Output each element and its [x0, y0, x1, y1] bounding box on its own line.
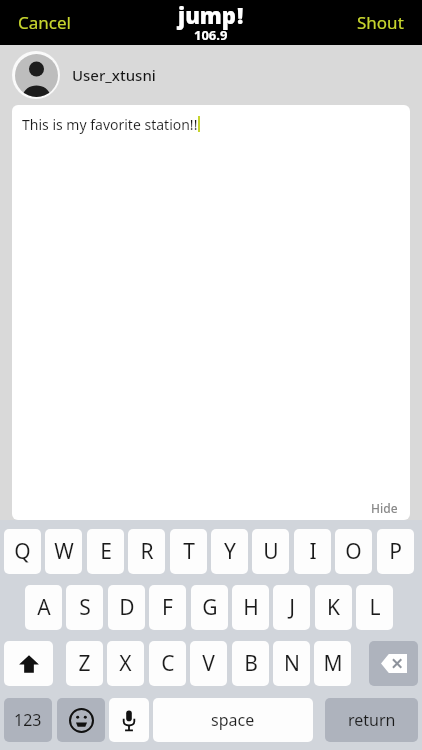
button[interactable]: Emoji [57, 698, 105, 742]
staticText: W [54, 537, 74, 566]
button[interactable]: Profile picture [12, 51, 60, 99]
staticText: U [263, 537, 279, 566]
button[interactable]: L [356, 585, 393, 630]
button[interactable]: Dictate [109, 698, 149, 742]
button[interactable]: A [25, 585, 62, 630]
staticText: space [211, 709, 255, 731]
button[interactable]: B [232, 641, 269, 686]
button[interactable]: I [294, 529, 331, 574]
button[interactable]: P [377, 529, 414, 574]
button[interactable]: This is my favorite station!! [12, 105, 410, 520]
staticText: T [183, 537, 195, 566]
button[interactable]: X [107, 641, 144, 686]
button[interactable]: return [325, 698, 418, 742]
staticText: P [389, 537, 402, 566]
button[interactable]: Z [66, 641, 103, 686]
button[interactable]: Shout [339, 3, 422, 42]
staticText: Y [224, 537, 236, 566]
button[interactable]: F [149, 585, 186, 630]
button[interactable]: Shift [4, 641, 53, 686]
button[interactable]: D [108, 585, 145, 630]
button[interactable]: R [128, 529, 165, 574]
button[interactable]: U [252, 529, 289, 574]
staticText: J [289, 593, 295, 622]
staticText: Shout [357, 11, 404, 34]
button[interactable]: G [191, 585, 228, 630]
staticText: Q [14, 537, 31, 566]
staticText: K [327, 593, 340, 622]
button[interactable]: M [314, 641, 351, 686]
button[interactable]: T [170, 529, 207, 574]
staticText: N [284, 649, 300, 678]
staticText: S [79, 593, 91, 622]
staticText: Z [78, 649, 91, 678]
button[interactable]: W [45, 529, 82, 574]
staticText: 106.9 [194, 26, 228, 41]
button[interactable]: Q [4, 529, 41, 574]
staticText: A [37, 593, 51, 622]
button[interactable]: S [66, 585, 103, 630]
staticText: Hide [371, 500, 398, 516]
staticText: return [348, 709, 396, 731]
staticText: D [119, 593, 135, 622]
button[interactable]: space [153, 698, 313, 742]
button[interactable]: 123 [4, 698, 52, 742]
staticText: B [244, 649, 258, 678]
staticText: O [345, 537, 362, 566]
staticText: L [369, 593, 381, 622]
staticText: 123 [14, 709, 42, 731]
button[interactable]: V [190, 641, 227, 686]
staticText: jump [178, 0, 237, 30]
staticText: H [243, 593, 259, 622]
staticText: G [202, 593, 218, 622]
staticText: R [140, 537, 154, 566]
staticText: E [100, 537, 112, 566]
staticText: F [162, 593, 173, 622]
button[interactable]: J [273, 585, 310, 630]
staticText: V [202, 649, 215, 678]
button[interactable]: Hide [371, 500, 410, 520]
staticText: C [161, 649, 175, 678]
staticText: M [323, 649, 343, 678]
button[interactable]: C [149, 641, 186, 686]
button[interactable]: K [315, 585, 352, 630]
button[interactable]: N [273, 641, 310, 686]
button[interactable]: O [335, 529, 372, 574]
button[interactable]: H [232, 585, 269, 630]
staticText: X [119, 649, 132, 678]
staticText: This is my favorite station!! [22, 115, 198, 134]
staticText: I [309, 537, 317, 566]
staticText: User_xtusni [72, 65, 156, 85]
button[interactable]: E [87, 529, 124, 574]
button[interactable]: Cancel [0, 3, 89, 42]
button[interactable]: Y [211, 529, 248, 574]
staticText: Cancel [18, 11, 71, 34]
button[interactable]: Backspace [369, 641, 418, 686]
staticText: ! [237, 0, 244, 30]
